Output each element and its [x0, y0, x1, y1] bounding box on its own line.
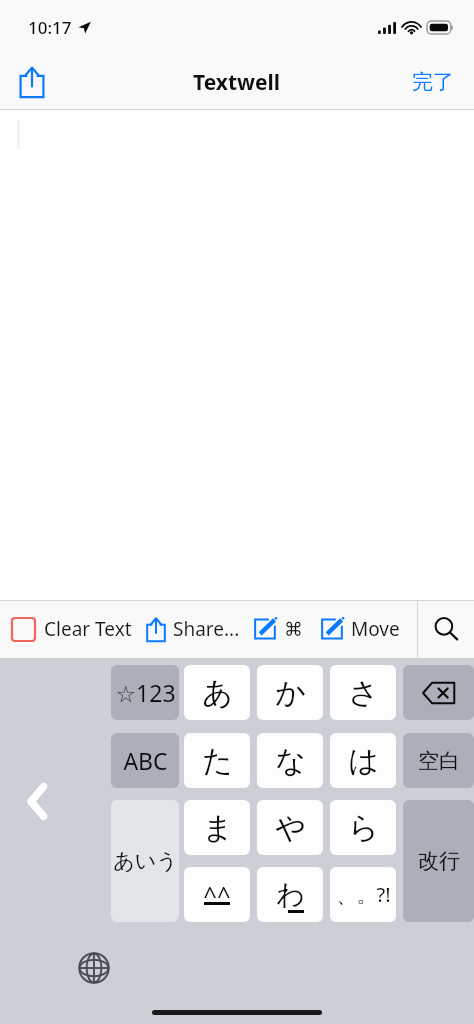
button[interactable]: Command action [253, 600, 303, 658]
button[interactable]: は [330, 733, 396, 788]
staticText: 10:17 [28, 16, 72, 39]
button[interactable]: ☆123 [111, 665, 179, 720]
button[interactable]: 改行 [403, 800, 474, 922]
button[interactable]: Clear Text [0, 600, 136, 658]
staticText: Textwell [193, 68, 281, 97]
button[interactable]: Share [8, 58, 56, 106]
staticText: 、。?! [336, 881, 391, 908]
staticText: 空白 [418, 748, 460, 774]
button[interactable]: あいう [111, 800, 179, 922]
staticText: 完了 [412, 69, 454, 95]
staticText: あいう [113, 848, 178, 874]
button[interactable]: ABC [111, 733, 179, 788]
button[interactable]: Delete [403, 665, 474, 720]
button[interactable]: ら [330, 800, 396, 855]
button[interactable]: 完了 [404, 61, 462, 103]
button[interactable]: 空白 [403, 733, 474, 788]
button[interactable]: Search [418, 600, 474, 658]
staticText: な [275, 742, 306, 780]
staticText: 改行 [418, 848, 460, 874]
button[interactable]: 、。?! [330, 867, 396, 922]
button[interactable]: Back [14, 778, 60, 824]
button[interactable]: Share... [146, 600, 240, 658]
staticText: や [275, 809, 306, 847]
button[interactable]: さ [330, 665, 396, 720]
button[interactable]: た [184, 733, 250, 788]
staticText: Share... [173, 616, 240, 642]
staticText: わ [276, 877, 305, 912]
button[interactable]: な [257, 733, 323, 788]
button[interactable]: Change keyboard [72, 946, 116, 990]
staticText: ☆123 [115, 677, 176, 708]
staticText: あ [202, 674, 233, 712]
button[interactable]: ^^ [184, 867, 250, 922]
staticText: ⌘ [284, 618, 303, 640]
staticText: か [275, 674, 306, 712]
staticText: ^^ [203, 878, 231, 911]
staticText: ABC [123, 745, 168, 776]
button[interactable]: Move [320, 600, 400, 658]
staticText: ら [348, 809, 379, 847]
staticText: Clear Text [44, 616, 132, 642]
staticText: Move [351, 616, 400, 642]
staticText: ま [202, 809, 233, 847]
button[interactable]: か [257, 665, 323, 720]
button[interactable]: わ [257, 867, 323, 922]
button[interactable]: ま [184, 800, 250, 855]
staticText: た [202, 742, 233, 780]
button[interactable]: や [257, 800, 323, 855]
button[interactable]: あ [184, 665, 250, 720]
staticText: さ [348, 674, 379, 712]
staticText: は [348, 742, 379, 780]
